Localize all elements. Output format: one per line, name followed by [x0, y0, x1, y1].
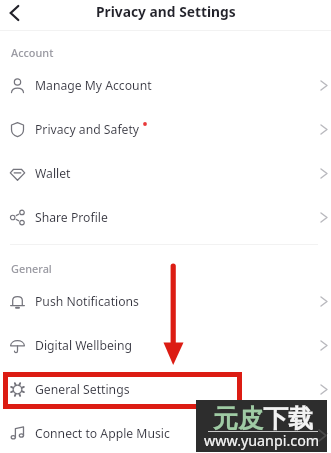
staticText: Wallet: [35, 165, 71, 182]
button[interactable]: Share Profile: [0, 195, 331, 239]
staticText: General: [11, 261, 52, 276]
staticText: Account: [11, 45, 54, 60]
staticText: Share Profile: [35, 209, 108, 226]
staticText: Manage My Account: [35, 77, 152, 94]
staticText: General Settings: [35, 381, 130, 398]
button[interactable]: Push Notifications: [0, 279, 331, 323]
staticText: Connect to Apple Music: [35, 425, 170, 442]
staticText: Privacy and Safety: [35, 121, 140, 138]
button[interactable]: General Settings: [0, 367, 331, 411]
button[interactable]: Connect to Apple Music: [0, 411, 331, 453]
button[interactable]: Manage My Account: [0, 63, 331, 107]
staticText: Digital Wellbeing: [35, 337, 133, 354]
staticText: 下载: [263, 403, 313, 434]
staticText: Privacy and Settings: [96, 2, 236, 21]
button[interactable]: Privacy and Safety: [0, 107, 331, 151]
button[interactable]: Digital Wellbeing: [0, 323, 331, 367]
button[interactable]: Wallet: [0, 151, 331, 195]
staticText: www.yuanpi.com: [204, 431, 320, 450]
staticText: 元皮: [213, 403, 263, 434]
staticText: Push Notifications: [35, 293, 139, 310]
button[interactable]: Back: [2, 1, 27, 26]
